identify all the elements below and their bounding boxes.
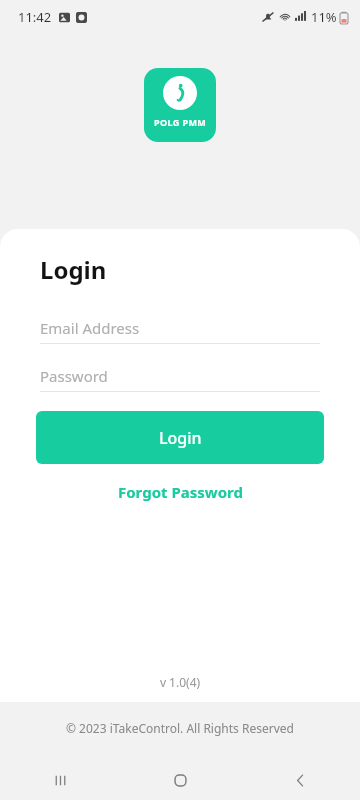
button[interactable]: Password	[40, 361, 320, 392]
staticText: Login	[159, 427, 202, 449]
staticText: v 1.0(4)	[0, 674, 360, 690]
button[interactable]: Recent apps	[0, 760, 120, 800]
staticText: Password	[40, 366, 108, 386]
button[interactable]: Email Address	[40, 313, 320, 344]
button[interactable]: Back	[240, 760, 360, 800]
button[interactable]: Forgot Password	[0, 476, 360, 508]
staticText: 11%	[311, 8, 337, 26]
staticText: © 2023 iTakeControl. All Rights Reserved	[66, 720, 294, 736]
staticText: Forgot Password	[118, 482, 243, 502]
button[interactable]: Login	[36, 411, 324, 464]
staticText: Email Address	[40, 318, 140, 338]
staticText: 11:42	[18, 8, 52, 26]
button[interactable]: POLG PMM logo	[144, 68, 216, 142]
staticText: POLG PMM	[154, 116, 207, 128]
button[interactable]: Home	[120, 760, 240, 800]
staticText: Login	[40, 253, 107, 286]
